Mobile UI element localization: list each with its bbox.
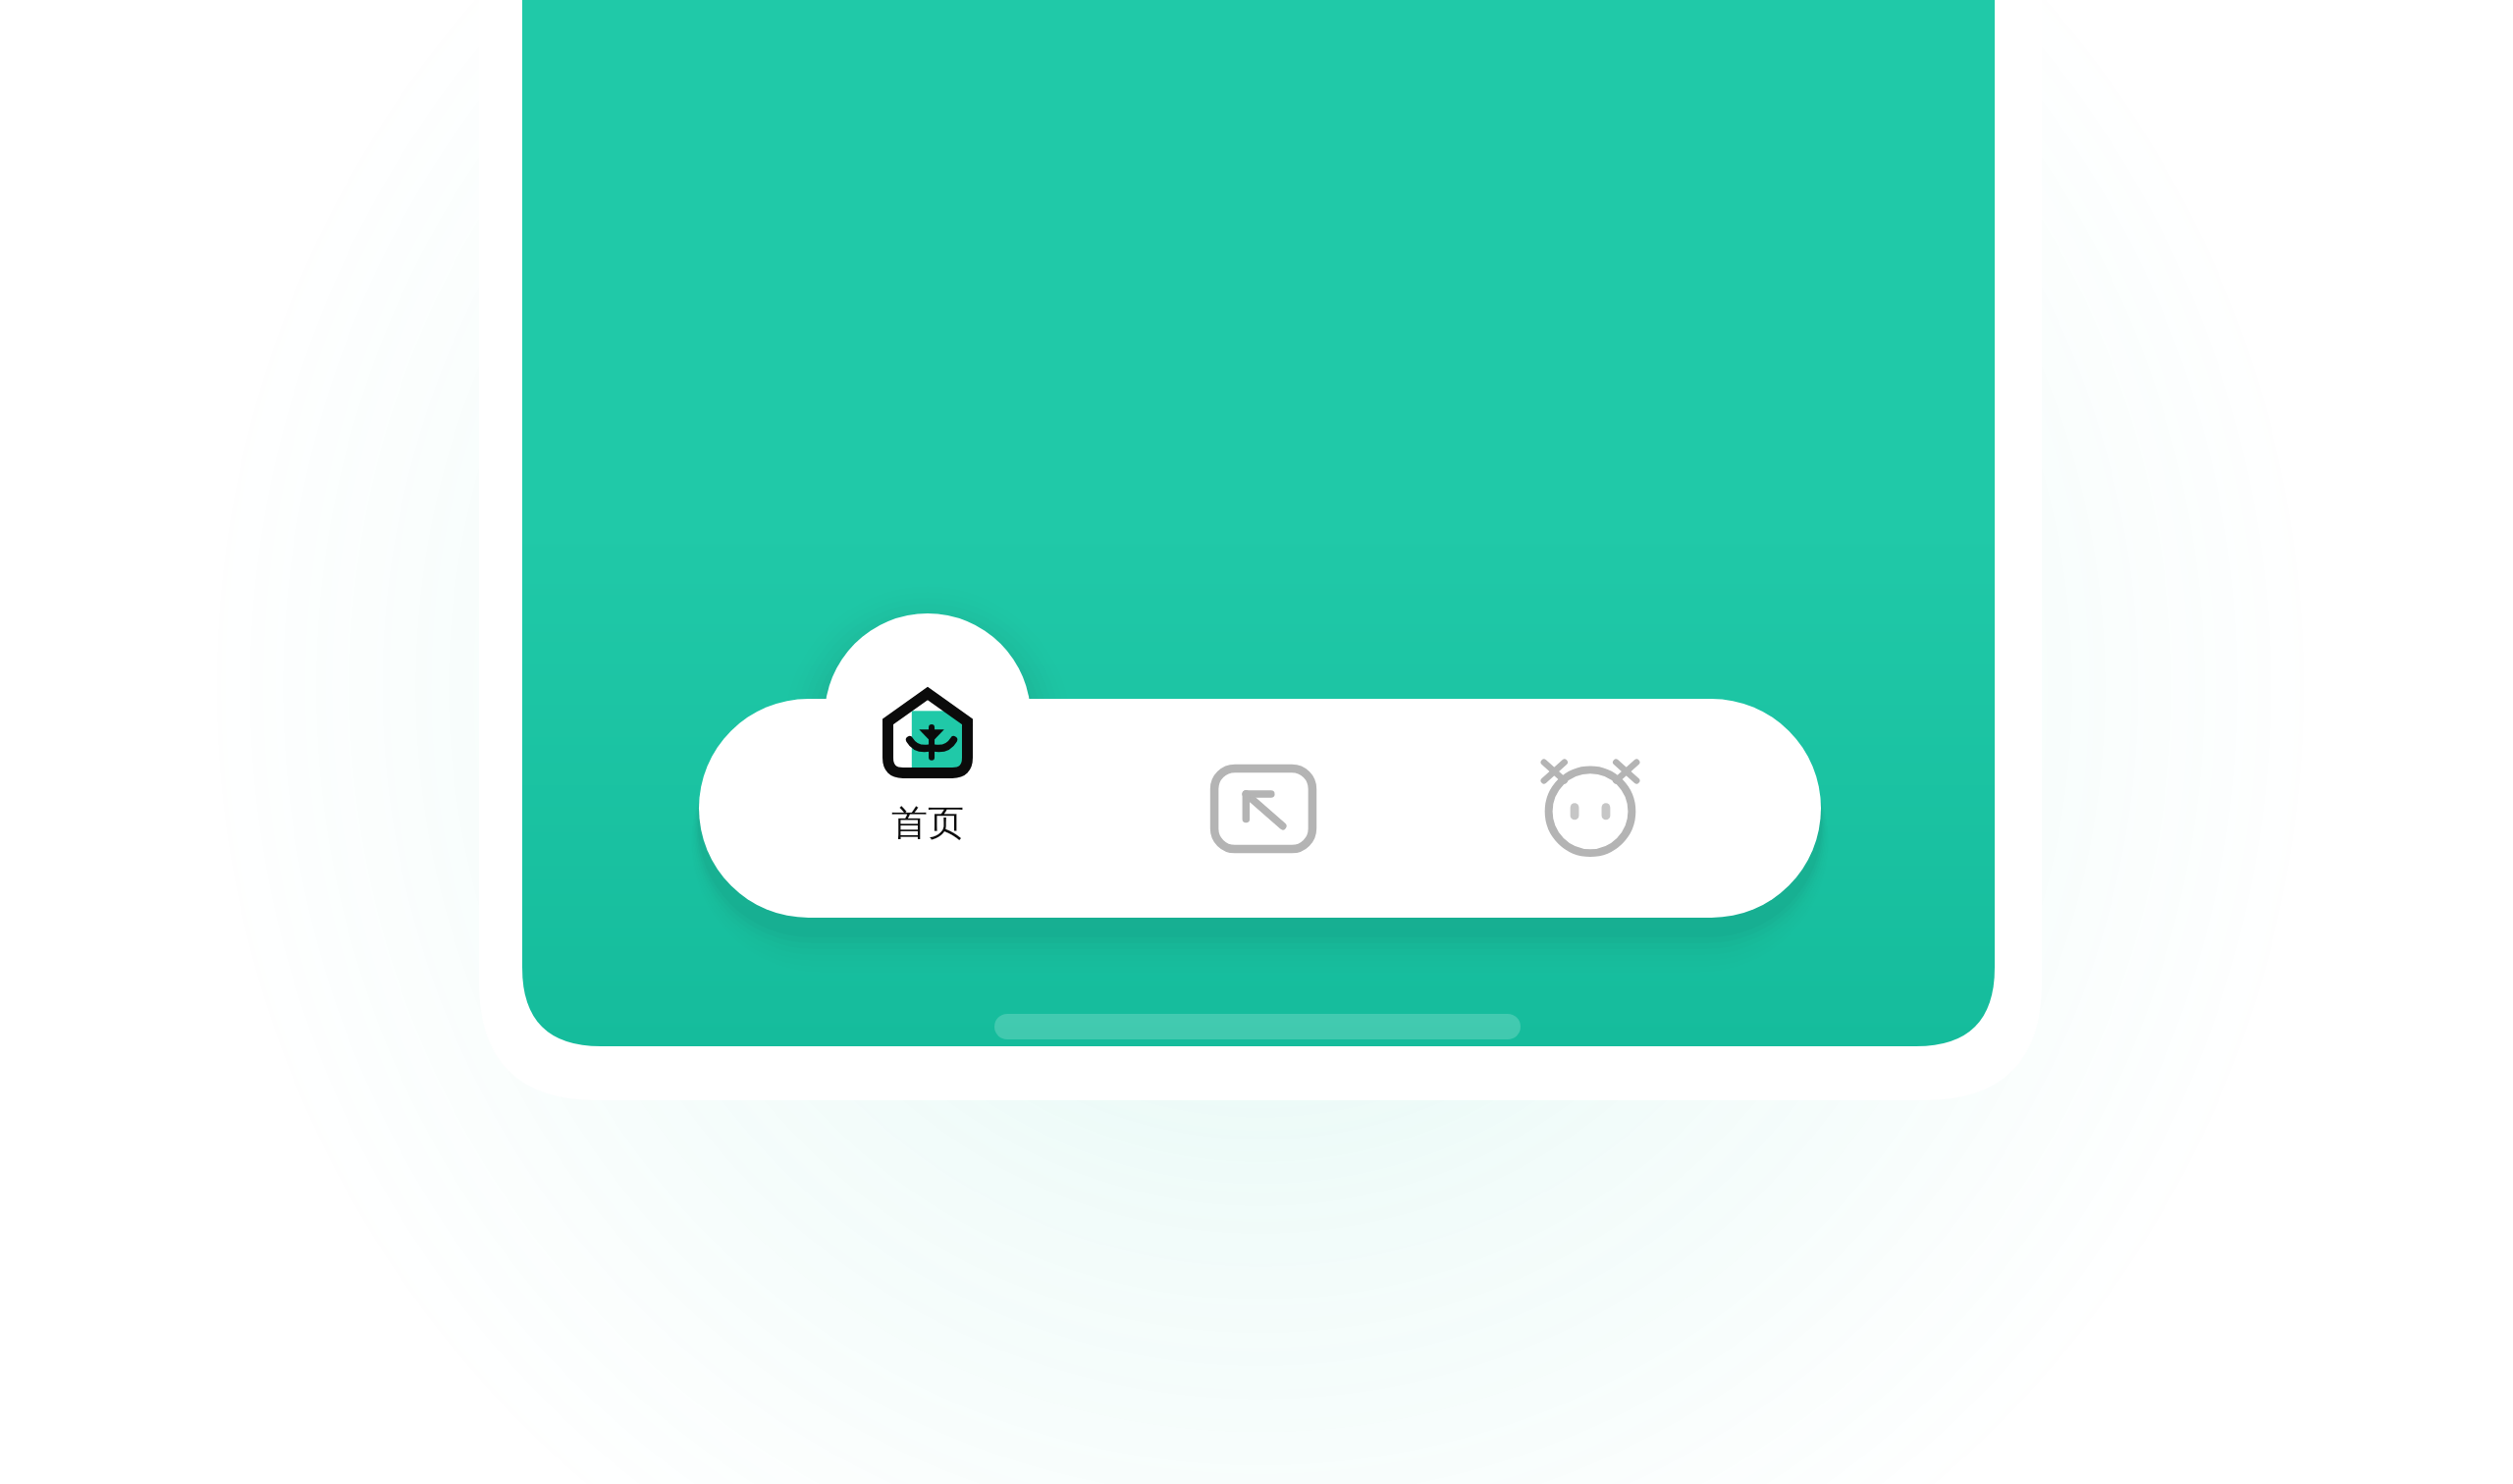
button[interactable]: Expand: [1155, 699, 1371, 918]
button[interactable]: 首页: [807, 613, 1048, 918]
staticText: 首页: [891, 800, 964, 846]
button[interactable]: Android: [1482, 699, 1698, 918]
